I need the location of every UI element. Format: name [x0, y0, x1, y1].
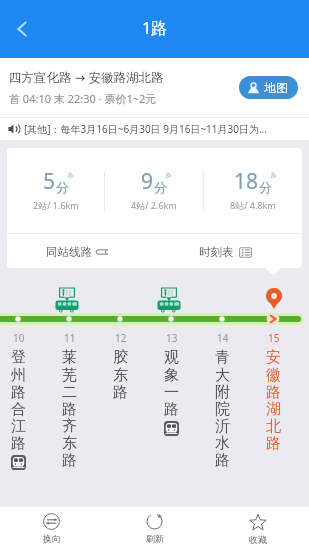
staticText: 4站/ 2.6km [131, 199, 177, 211]
staticText: 莱 芜 二 路 齐 东 路 [62, 348, 77, 469]
button[interactable]: 地图 [239, 76, 298, 99]
staticText: 首 04:10 末 22:30 · 票价1~2元 [9, 91, 157, 106]
button[interactable]: 9 [105, 148, 203, 233]
button[interactable]: 换向 [0, 507, 103, 550]
staticText: 8站/ 4.8km [230, 199, 276, 211]
button[interactable]: Back [0, 0, 44, 58]
staticText: 分 [56, 179, 69, 195]
staticText: 12 [115, 331, 127, 345]
button[interactable]: 同站线路 [7, 234, 154, 268]
staticText: 时刻表 [199, 245, 234, 259]
button[interactable]: 18 [204, 148, 302, 233]
button[interactable]: 12 [95, 331, 146, 401]
button[interactable]: 14 [197, 331, 248, 469]
button[interactable]: 5 [7, 148, 104, 233]
staticText: 13 [166, 331, 178, 345]
button[interactable]: 11 [44, 331, 95, 469]
staticText: 胶 东 路 [113, 348, 128, 401]
staticText: 18 [234, 167, 259, 196]
staticText: 1路 [142, 17, 168, 39]
button[interactable]: 15 [248, 331, 299, 452]
staticText: 四方宣化路 → 安徽路湖北路 [9, 69, 164, 86]
staticText: 10 [13, 331, 25, 345]
staticText: 青 大 附 院 沂 水 路 [215, 348, 230, 469]
button[interactable]: 13 [146, 331, 197, 436]
staticText: 换向 [43, 533, 61, 544]
staticText: 地图 [264, 80, 288, 95]
staticText: 分 [259, 179, 272, 195]
staticText: 观 象 一 路 [164, 348, 179, 418]
staticText: 同站线路 [46, 245, 92, 259]
staticText: 11 [64, 331, 76, 345]
staticText: 2站/ 1.6km [33, 199, 79, 211]
button[interactable]: 收藏 [206, 507, 309, 550]
staticText: 15 [268, 331, 280, 345]
button[interactable]: 时刻表 [154, 234, 302, 268]
staticText: [其他]：每年3月16日~6月30日 9月16日~11月30日为… [24, 122, 267, 136]
staticText: 分 [154, 179, 167, 195]
staticText: 刷新 [146, 533, 164, 544]
staticText: 9 [141, 167, 154, 196]
staticText: 登 州 路 合 江 路 [11, 348, 26, 452]
staticText: 收藏 [249, 534, 267, 545]
staticText: 5 [43, 167, 56, 196]
staticText: 安 徽 路 湖 北 路 [266, 348, 281, 452]
button[interactable]: 10 [0, 331, 44, 470]
button[interactable]: 刷新 [103, 507, 206, 550]
staticText: 14 [217, 331, 229, 345]
